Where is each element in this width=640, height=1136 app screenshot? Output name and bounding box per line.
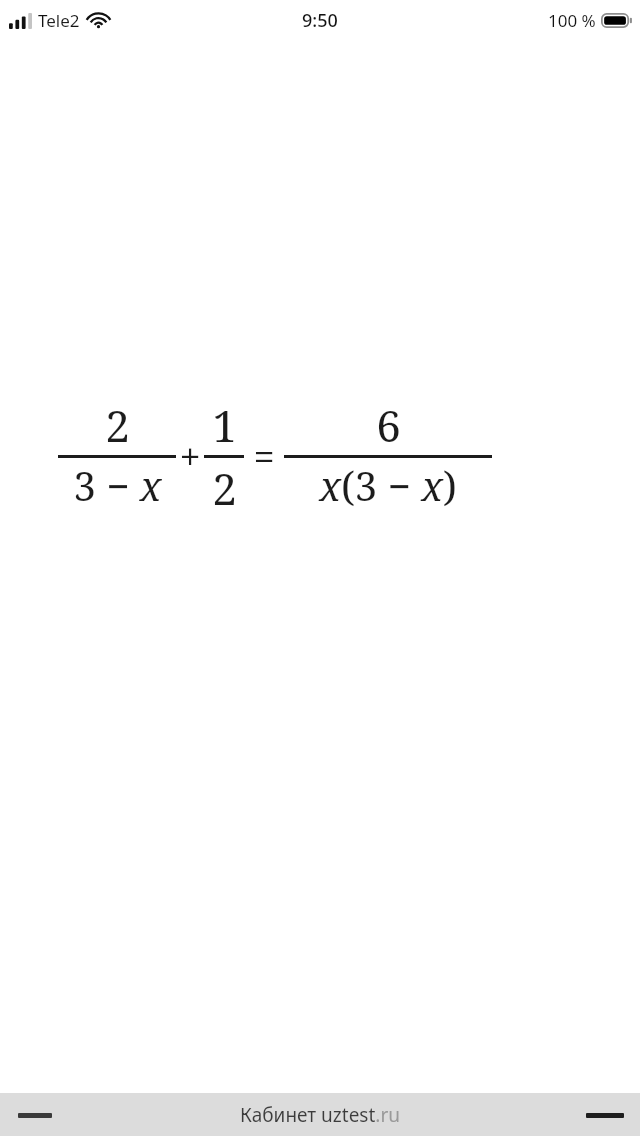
staticText: Кабинет uztest.ru xyxy=(240,1102,400,1128)
button[interactable]: Previous page xyxy=(12,1100,58,1130)
button[interactable]: Next page xyxy=(582,1100,628,1130)
staticText: Tele2 xyxy=(38,9,80,32)
staticText: 1 xyxy=(212,395,237,455)
staticText: x(3 − x) xyxy=(319,458,457,512)
staticText: 3 − x xyxy=(73,458,162,512)
staticText: 2 xyxy=(105,395,130,455)
staticText: 2 xyxy=(212,458,237,518)
button[interactable]: Кабинет uztest.ru xyxy=(230,1098,410,1132)
staticText: = xyxy=(253,430,275,482)
staticText: + xyxy=(179,430,201,482)
staticText: 6 xyxy=(376,395,401,455)
staticText: 100 % xyxy=(548,9,596,32)
staticText: 9:50 xyxy=(302,8,338,33)
